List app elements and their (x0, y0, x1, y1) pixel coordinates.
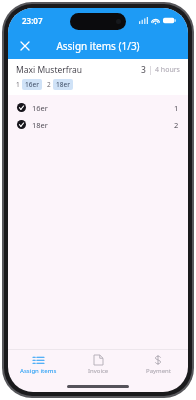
staticText: Assign items (1/3) (56, 39, 140, 53)
staticText: 16er (25, 80, 39, 89)
staticText: Payment (146, 367, 171, 375)
staticText: 18er (32, 120, 48, 130)
button[interactable]: Payment (128, 350, 188, 380)
button[interactable]: Invoice (68, 350, 128, 380)
button[interactable]: 16er (8, 99, 188, 116)
staticText: 18er (56, 80, 70, 89)
staticText: 23:07 (22, 15, 43, 26)
staticText: 2 (174, 120, 179, 130)
button[interactable]: 18er (8, 116, 188, 133)
staticText: Maxi Musterfrau (16, 64, 83, 76)
staticText: Assign items (20, 367, 57, 375)
button[interactable]: Assign items (8, 350, 68, 380)
staticText: 4 hours (155, 65, 180, 75)
button[interactable]: Close (16, 37, 34, 55)
staticText: 1 (16, 80, 20, 89)
staticText: 2 (47, 80, 51, 89)
staticText: 16er (32, 103, 48, 113)
staticText: 1 (174, 103, 179, 113)
button[interactable]: Maxi Musterfrau (8, 59, 188, 95)
staticText: 3 (141, 64, 146, 76)
staticText: Invoice (88, 367, 109, 375)
